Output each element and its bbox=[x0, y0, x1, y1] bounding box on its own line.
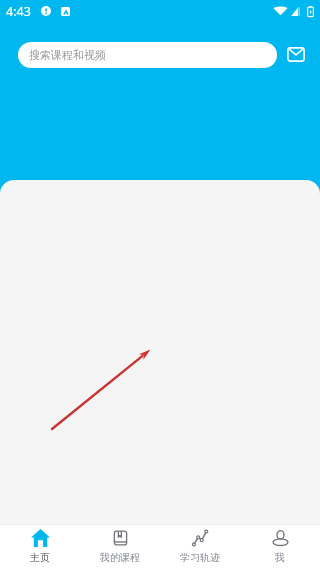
button[interactable]: 我 bbox=[240, 525, 320, 568]
staticText: 4:43 bbox=[6, 3, 31, 20]
staticText: 我的课程 bbox=[100, 551, 140, 564]
button[interactable]: 主页 bbox=[0, 525, 80, 568]
staticText: 我 bbox=[275, 551, 285, 564]
staticText: 主页 bbox=[30, 551, 50, 564]
button[interactable]: 搜索课程和视频 bbox=[18, 42, 277, 68]
staticText: 搜索课程和视频 bbox=[29, 48, 106, 62]
staticText: 学习轨迹 bbox=[180, 551, 220, 564]
button[interactable]: Messages bbox=[285, 44, 307, 66]
button[interactable]: 我的课程 bbox=[80, 525, 160, 568]
button[interactable]: 学习轨迹 bbox=[160, 525, 240, 568]
